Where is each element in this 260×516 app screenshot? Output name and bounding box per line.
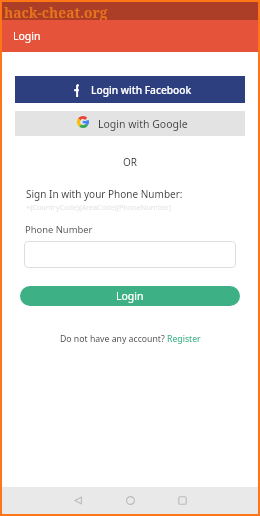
staticText: Login with Google [98, 117, 188, 131]
button[interactable]: Home [115, 487, 145, 514]
button[interactable]: Login with Google [15, 111, 245, 136]
button[interactable]: Back [63, 487, 93, 514]
button[interactable] [24, 241, 236, 268]
staticText: Login [116, 289, 144, 303]
staticText: Sign In with your Phone Number: [26, 187, 183, 201]
staticText: hack-cheat.org [4, 3, 108, 21]
staticText: Do not have any account? [60, 333, 167, 345]
staticText: Login with Facebook [91, 83, 192, 97]
button[interactable]: Register [167, 333, 201, 345]
staticText: OR [15, 155, 245, 169]
staticText: Login [13, 29, 41, 43]
button[interactable]: Recents [167, 487, 197, 514]
button[interactable]: Login with Facebook [15, 76, 245, 103]
staticText: Phone Number [25, 223, 93, 236]
staticText: +(CountryCode)(AreaCode)(PhoneNumber) [26, 202, 172, 212]
button[interactable]: Login [20, 286, 240, 306]
